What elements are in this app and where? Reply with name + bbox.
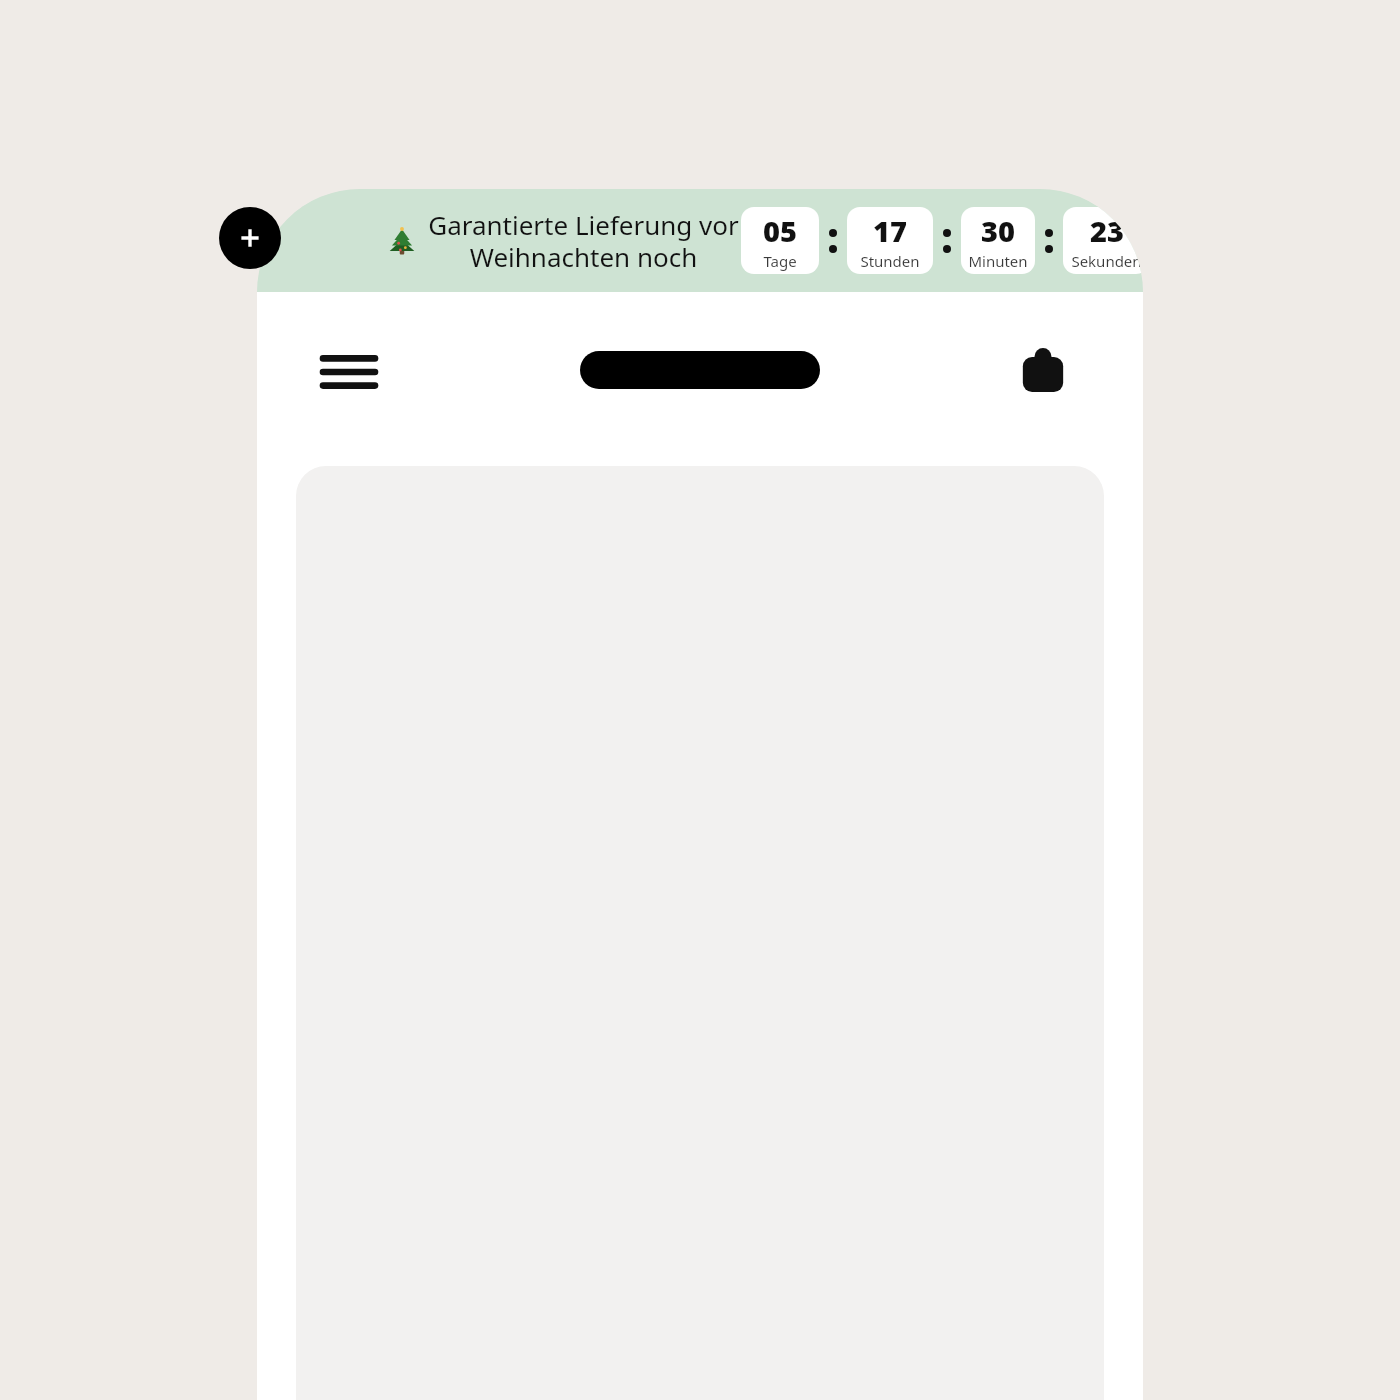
staticText: Tage [763, 251, 797, 271]
button[interactable]: 05 [741, 207, 819, 274]
staticText: Sekunden [1071, 251, 1142, 271]
staticText: Stunden [860, 251, 920, 271]
staticText: Minuten [968, 251, 1028, 271]
staticText: 23 [1090, 211, 1124, 250]
button[interactable]: Warenkorb [1012, 340, 1074, 400]
staticText: Garantierte Lieferung vor Weihnachten no… [428, 207, 739, 275]
staticText: 17 [873, 211, 907, 250]
button[interactable]: 17 [847, 207, 933, 274]
button[interactable]: 30 [961, 207, 1035, 274]
button[interactable]: Logo [580, 351, 820, 389]
button[interactable]: 23 [1063, 207, 1143, 274]
button[interactable]: Garantierte Lieferung vor Weihnachten no… [257, 189, 1143, 292]
staticText: 05 [763, 211, 797, 250]
staticText: 30 [981, 211, 1015, 250]
button[interactable]: Hinzufügen [219, 207, 281, 269]
button[interactable]: Menü [311, 343, 387, 401]
